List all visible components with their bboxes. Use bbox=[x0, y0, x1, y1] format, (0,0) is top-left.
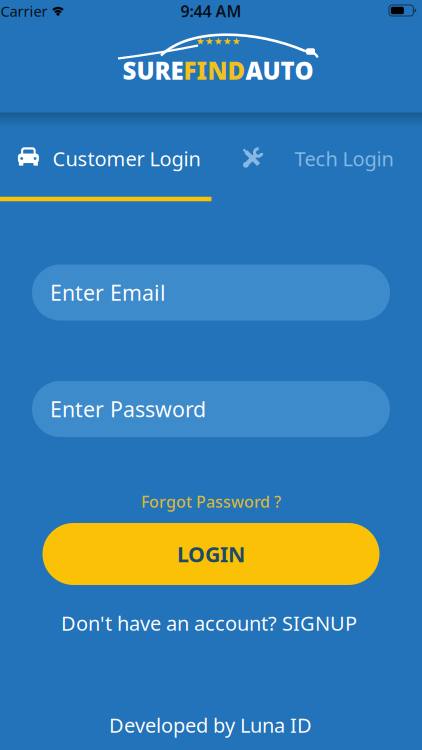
button[interactable]: Enter Password bbox=[32, 381, 390, 437]
staticText: Don't have an account? SIGNUP bbox=[61, 610, 357, 636]
staticText: Enter Password bbox=[50, 395, 206, 423]
button[interactable]: Enter Email bbox=[32, 264, 390, 320]
staticText: LOGIN bbox=[177, 540, 245, 568]
button[interactable]: Tech Login bbox=[211, 125, 422, 201]
staticText: Forgot Password ? bbox=[141, 491, 281, 512]
staticText: SURE bbox=[122, 55, 183, 86]
button[interactable]: LOGIN bbox=[42, 523, 379, 585]
staticText: Developed by Luna ID bbox=[109, 712, 312, 738]
staticText: Customer Login bbox=[52, 145, 200, 172]
staticText: Enter Email bbox=[50, 278, 166, 307]
staticText: 9:44 AM bbox=[180, 0, 241, 22]
button[interactable]: Forgot Password ? bbox=[141, 489, 281, 513]
button[interactable]: Customer Login bbox=[0, 125, 211, 201]
staticText: Tech Login bbox=[294, 145, 393, 172]
staticText: Carrier bbox=[0, 1, 47, 21]
staticText: AUTO bbox=[245, 55, 313, 86]
button[interactable]: Don't have an account? SIGNUP bbox=[61, 608, 357, 638]
staticText: FIND bbox=[183, 55, 245, 86]
